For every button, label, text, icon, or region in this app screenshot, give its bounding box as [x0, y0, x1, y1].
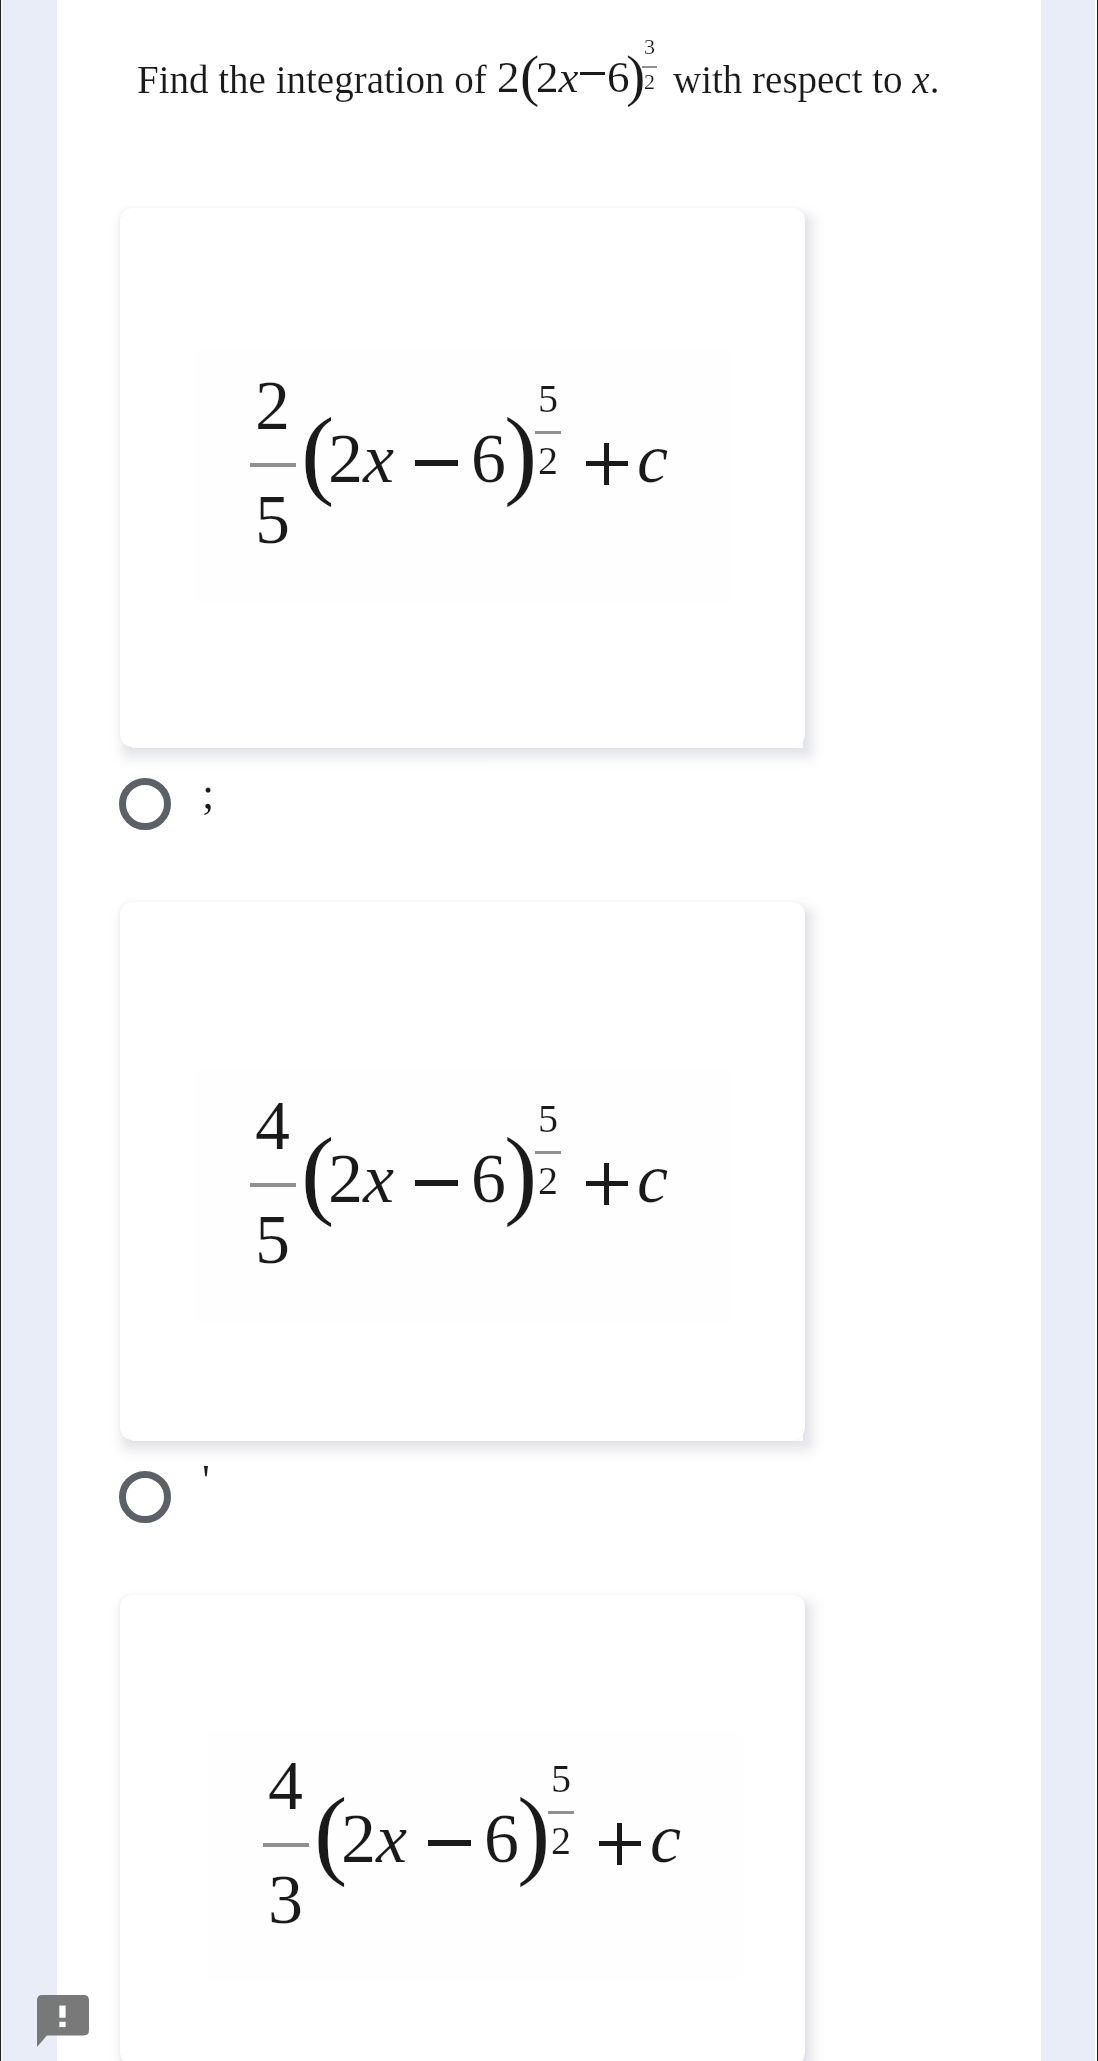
staticText: 2x: [536, 52, 579, 102]
staticText: 2x: [328, 1140, 395, 1218]
staticText: 5: [551, 1756, 571, 1800]
staticText: 6: [607, 52, 630, 102]
staticText: ): [517, 1777, 551, 1888]
staticText: 5: [538, 376, 558, 420]
button[interactable]: 4: [120, 1595, 805, 2061]
staticText: 6: [484, 1800, 519, 1878]
staticText: 2: [497, 52, 520, 102]
staticText: 4: [255, 1087, 290, 1165]
staticText: ;: [202, 769, 215, 818]
staticText: 5: [255, 1201, 290, 1279]
staticText: (: [301, 1117, 335, 1228]
staticText: ': [202, 1456, 210, 1505]
staticText: 2: [551, 1818, 571, 1862]
staticText: 2: [538, 1158, 558, 1202]
staticText: (: [314, 1777, 348, 1888]
staticText: ): [626, 43, 646, 107]
staticText: 2x: [341, 1800, 408, 1878]
staticText: ): [504, 397, 538, 508]
staticText: 3: [268, 1861, 303, 1939]
button[interactable]: Report a problem: [37, 1995, 89, 2047]
staticText: (: [520, 43, 540, 107]
staticText: 6: [471, 1140, 506, 1218]
staticText: c: [637, 420, 669, 498]
staticText: 5: [255, 481, 290, 559]
staticText: 5: [538, 1096, 558, 1140]
staticText: 2: [644, 69, 655, 93]
staticText: 4: [268, 1747, 303, 1825]
staticText: (: [301, 397, 335, 508]
staticText: 3: [644, 34, 655, 58]
staticText: 2x: [328, 420, 395, 498]
button[interactable]: 2: [120, 208, 805, 747]
staticText: ): [504, 1117, 538, 1228]
staticText: c: [637, 1140, 669, 1218]
staticText: 2: [538, 438, 558, 482]
button[interactable]: 4: [120, 902, 805, 1440]
staticText: c: [650, 1800, 682, 1878]
staticText: 6: [471, 420, 506, 498]
staticText: Find the integration of: [137, 58, 487, 101]
button[interactable]: Select option 2: [100, 1452, 280, 1542]
staticText: with respect to x.: [673, 58, 940, 101]
staticText: 2: [255, 367, 290, 445]
button[interactable]: Select option 1: [100, 759, 280, 849]
